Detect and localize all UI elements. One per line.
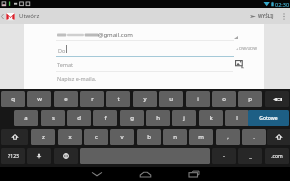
- staticText: k: [209, 114, 213, 122]
- button[interactable]: Hide keyboard: [73, 167, 121, 181]
- staticText: q: [11, 95, 15, 103]
- staticText: g: [130, 114, 134, 122]
- button[interactable]: l: [225, 110, 249, 126]
- staticText: ?123: [8, 153, 19, 160]
- staticText: ,: [227, 133, 229, 141]
- staticText: m: [198, 133, 204, 141]
- button[interactable]: i: [186, 91, 210, 107]
- button[interactable]: u: [159, 91, 183, 107]
- staticText: -: [223, 152, 225, 160]
- staticText: d: [77, 114, 81, 122]
- staticText: h: [156, 114, 160, 122]
- staticText: w: [37, 95, 42, 103]
- button[interactable]: v: [110, 129, 134, 145]
- button[interactable]: + DW/UDW: [236, 46, 257, 51]
- button[interactable]: -: [212, 148, 236, 164]
- staticText: Temat: [57, 61, 73, 68]
- button[interactable]: x: [58, 129, 82, 145]
- staticText: c: [95, 133, 98, 141]
- staticText: f: [104, 114, 107, 122]
- staticText: a: [24, 114, 28, 122]
- button[interactable]: h: [146, 110, 170, 126]
- staticText: @gmail.com: [98, 31, 133, 39]
- staticText: z: [42, 133, 45, 141]
- button[interactable]: r: [80, 91, 104, 107]
- button[interactable]: Shift: [267, 129, 290, 145]
- staticText: .com: [271, 153, 283, 160]
- staticText: p: [248, 95, 252, 103]
- staticText: b: [147, 133, 151, 141]
- button[interactable]: n: [163, 129, 187, 145]
- staticText: t: [117, 95, 120, 103]
- staticText: y: [143, 95, 147, 103]
- button[interactable]: d: [67, 110, 91, 126]
- staticText: WYŚLIJ: [258, 13, 274, 19]
- button[interactable]: ?123: [1, 148, 25, 164]
- button[interactable]: WYŚLIJ: [247, 8, 277, 24]
- staticText: u: [169, 95, 173, 103]
- button[interactable]: c: [84, 129, 108, 145]
- button[interactable]: k: [199, 110, 223, 126]
- button[interactable]: p: [238, 91, 262, 107]
- staticText: Utwórz: [19, 12, 40, 20]
- button[interactable]: Change language: [54, 148, 78, 164]
- button[interactable]: y: [133, 91, 157, 107]
- button[interactable]: w: [27, 91, 51, 107]
- button[interactable]: Backspace: [265, 91, 289, 107]
- button[interactable]: g: [120, 110, 144, 126]
- button[interactable]: .: [242, 129, 266, 145]
- staticText: Gotowe: [259, 115, 278, 122]
- button[interactable]: e: [54, 91, 78, 107]
- staticText: j: [183, 114, 185, 122]
- staticText: r: [91, 95, 94, 103]
- button[interactable]: z: [31, 129, 55, 145]
- staticText: o: [222, 95, 226, 103]
- staticText: .: [253, 133, 255, 141]
- button[interactable]: Recent apps: [170, 167, 218, 181]
- staticText: s: [52, 114, 55, 122]
- staticText: Napisz e-maila.: [57, 75, 97, 82]
- button[interactable]: b: [137, 129, 161, 145]
- button[interactable]: f: [93, 110, 117, 126]
- button[interactable]: Home: [121, 167, 169, 181]
- staticText: x: [68, 133, 72, 141]
- button[interactable]: ,: [216, 129, 240, 145]
- button[interactable]: Attach picture: [235, 60, 245, 69]
- staticText: i: [197, 95, 199, 103]
- button[interactable]: [57, 32, 99, 38]
- button[interactable]: s: [41, 110, 65, 126]
- staticText: e: [64, 95, 68, 103]
- button[interactable]: .com: [265, 148, 289, 164]
- staticText: n: [173, 133, 177, 141]
- button[interactable]: j: [172, 110, 196, 126]
- button[interactable]: a: [14, 110, 38, 126]
- button[interactable]: Gotowe: [248, 110, 289, 126]
- staticText: l: [236, 114, 238, 122]
- staticText: 02:30: [275, 1, 290, 8]
- button[interactable]: _: [238, 148, 262, 164]
- staticText: _: [249, 152, 252, 160]
- button[interactable]: More options: [277, 8, 290, 24]
- button[interactable]: Back: [0, 8, 5, 24]
- button[interactable]: Gmail: [5, 8, 16, 24]
- staticText: Do: [58, 47, 66, 54]
- button[interactable]: Shift: [1, 129, 28, 145]
- button[interactable]: o: [212, 91, 236, 107]
- button[interactable]: t: [106, 91, 130, 107]
- button[interactable]: m: [189, 129, 213, 145]
- button[interactable]: Voice input: [27, 148, 51, 164]
- button[interactable]: q: [1, 91, 25, 107]
- staticText: v: [120, 133, 124, 141]
